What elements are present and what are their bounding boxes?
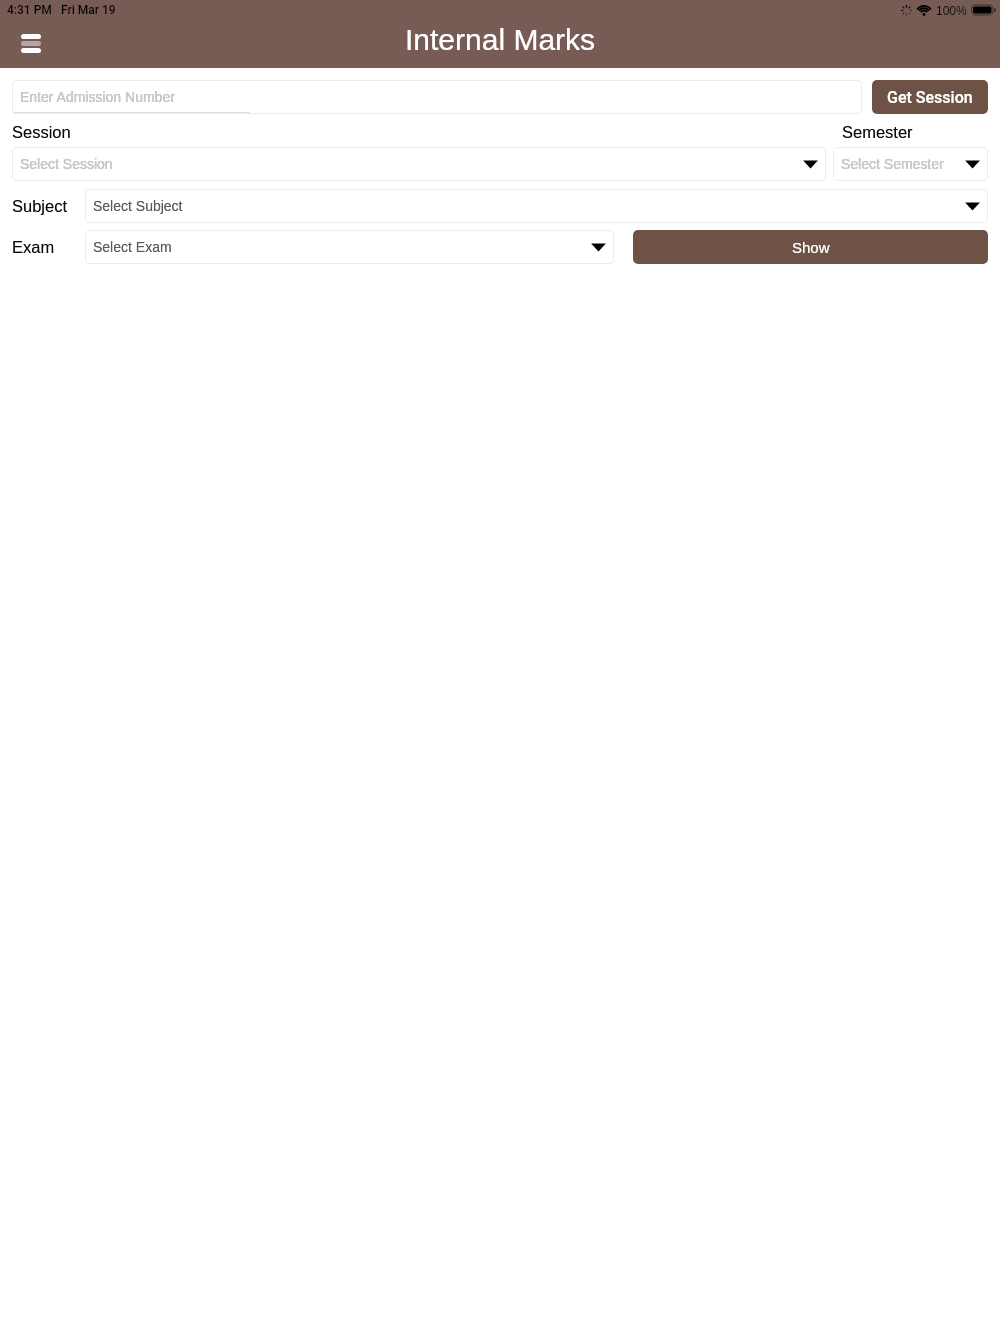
button[interactable]: Enter Admission Number bbox=[12, 80, 862, 114]
button[interactable]: Select Subject bbox=[85, 189, 988, 223]
staticText: Exam bbox=[12, 238, 55, 256]
staticText: Session bbox=[12, 123, 71, 141]
staticText: Enter Admission Number bbox=[20, 89, 175, 105]
staticText: 100% bbox=[936, 4, 967, 17]
staticText: 4:31 PM bbox=[7, 3, 52, 17]
staticText: Select Exam bbox=[93, 239, 172, 255]
staticText: Select Exam bbox=[93, 239, 172, 255]
staticText: Select Session bbox=[20, 156, 113, 172]
staticText: Show bbox=[792, 239, 830, 256]
staticText: Semester bbox=[842, 123, 913, 141]
staticText: Fri Mar 19 bbox=[61, 3, 116, 17]
button[interactable]: Open navigation menu bbox=[9, 21, 53, 65]
staticText: Subject bbox=[12, 197, 68, 215]
staticText: Select Semester bbox=[841, 156, 944, 172]
staticText: Select Subject bbox=[93, 198, 183, 214]
staticText: Select Subject bbox=[93, 198, 183, 214]
staticText: Internal Marks bbox=[405, 23, 596, 57]
staticText: Subject bbox=[12, 197, 68, 215]
button[interactable]: Select Semester bbox=[833, 147, 988, 181]
button[interactable]: Select Exam bbox=[85, 230, 614, 264]
button[interactable]: Get Session bbox=[872, 80, 988, 114]
button[interactable]: Select Session bbox=[12, 147, 826, 181]
staticText: Select Semester bbox=[841, 156, 944, 172]
staticText: Semester bbox=[842, 123, 913, 141]
staticText: Get Session bbox=[887, 88, 973, 107]
button[interactable]: Show bbox=[633, 230, 988, 264]
staticText: Exam bbox=[12, 238, 55, 256]
staticText: Select Session bbox=[20, 156, 113, 172]
staticText: Enter Admission Number bbox=[20, 89, 175, 105]
staticText: Session bbox=[12, 123, 71, 141]
